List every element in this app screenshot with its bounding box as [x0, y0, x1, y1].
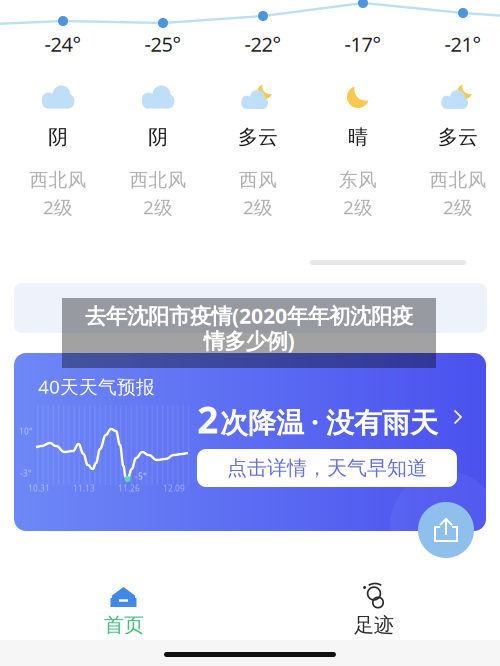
staticText: 2级: [243, 195, 273, 219]
button[interactable]: Share: [418, 502, 474, 558]
staticText: 西北风: [429, 168, 486, 191]
staticText: 2级: [443, 195, 473, 219]
staticText: -17°: [344, 31, 381, 57]
staticText: 12.09: [163, 483, 185, 494]
staticText: 首页: [104, 613, 144, 637]
staticText: 东风: [339, 168, 377, 191]
staticText: -3°: [20, 468, 31, 479]
staticText: 点击详情，天气早知道: [227, 456, 427, 480]
staticText: 去年沈阳市疫情(2020年年初沈阳疫: [85, 301, 413, 330]
staticText: 西北风: [129, 168, 186, 191]
button[interactable]: 足迹: [324, 578, 424, 640]
staticText: -21°: [444, 31, 481, 57]
staticText: 阴: [48, 125, 68, 149]
staticText: 11.26: [118, 483, 140, 494]
button[interactable]: 首页: [74, 578, 174, 640]
staticText: -5°: [135, 471, 146, 482]
staticText: 40天天气预报: [38, 374, 155, 399]
staticText: 2级: [143, 195, 173, 219]
staticText: 10°: [19, 426, 32, 437]
staticText: 阴: [148, 125, 168, 149]
staticText: 多云: [238, 125, 278, 149]
staticText: -24°: [44, 31, 81, 57]
staticText: 次降温 · 没有雨天: [220, 403, 438, 441]
staticText: 2级: [43, 195, 73, 219]
staticText: 10.31: [28, 483, 50, 494]
staticText: -22°: [244, 31, 281, 57]
staticText: 情多少例): [203, 326, 294, 355]
staticText: 晴: [348, 125, 368, 149]
staticText: 足迹: [354, 613, 394, 637]
staticText: 西风: [239, 168, 277, 191]
staticText: 西北风: [29, 168, 86, 191]
staticText: 多云: [438, 125, 478, 149]
staticText: -25°: [144, 31, 181, 57]
staticText: 2: [197, 394, 218, 444]
staticText: 2级: [343, 195, 373, 219]
staticText: 11.13: [73, 483, 95, 494]
